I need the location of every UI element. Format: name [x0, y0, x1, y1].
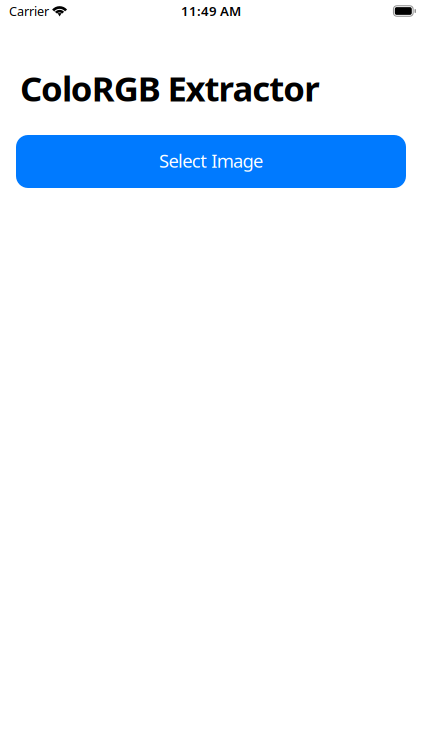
- staticText: Select Image: [159, 148, 263, 173]
- staticText: ColoRGB Extractor: [20, 64, 319, 112]
- staticText: 11:49 AM: [181, 2, 241, 20]
- button[interactable]: Select Image: [16, 135, 406, 188]
- staticText: Carrier: [9, 2, 49, 20]
